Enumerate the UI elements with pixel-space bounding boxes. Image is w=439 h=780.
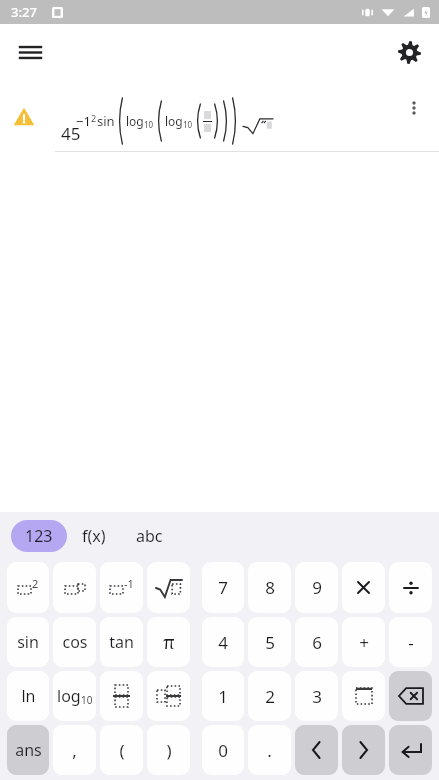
button[interactable]: More options [394, 88, 434, 128]
staticText: 123 [25, 525, 53, 547]
staticText: ln [21, 685, 36, 707]
staticText: 1 [218, 685, 228, 708]
button[interactable]: Move left [295, 725, 338, 775]
staticText: ans [15, 739, 42, 761]
button[interactable]: 6 [295, 617, 338, 667]
staticText: 45 [61, 122, 81, 145]
button[interactable]: Pi [147, 617, 190, 667]
staticText: sin [97, 112, 115, 130]
button[interactable]: Multiply [342, 562, 385, 613]
staticText: −1 [76, 112, 91, 130]
button[interactable]: Power [53, 562, 96, 613]
staticText: 3:27 [11, 3, 37, 21]
button[interactable]: Settings [387, 30, 431, 74]
staticText: - [408, 631, 414, 654]
button[interactable]: 5 [248, 617, 291, 667]
button[interactable]: ) [147, 725, 190, 775]
button[interactable]: Placeholder [342, 671, 385, 721]
staticText: 2 [265, 685, 275, 708]
button[interactable]: 123 [11, 520, 67, 552]
button[interactable]: 2 [248, 671, 291, 721]
button[interactable]: Square [7, 562, 49, 613]
button[interactable]: Matrix [147, 671, 190, 721]
button[interactable]: 7 [202, 562, 244, 613]
button[interactable]: 9 [295, 562, 338, 613]
staticText: + [359, 631, 369, 654]
staticText: cos [62, 631, 88, 653]
button[interactable]: ln [7, 671, 49, 721]
staticText: . [267, 739, 272, 762]
button[interactable]: Move right [342, 725, 385, 775]
button[interactable]: sin [7, 617, 49, 667]
staticText: log [57, 685, 81, 707]
staticText: , [72, 739, 77, 762]
button[interactable]: abc [121, 520, 178, 552]
button[interactable]: ( [100, 725, 143, 775]
staticText: f(x) [82, 525, 106, 547]
button[interactable]: Fraction [100, 671, 143, 721]
button[interactable]: , [53, 725, 96, 775]
button[interactable]: 0 [202, 725, 244, 775]
button[interactable]: cos [53, 617, 96, 667]
button[interactable]: - [389, 617, 432, 667]
button[interactable]: Menu [8, 30, 52, 74]
button[interactable]: Log base 10 [53, 671, 96, 721]
staticText: sin [17, 631, 39, 653]
button[interactable]: Enter [389, 725, 432, 775]
button[interactable]: Divide [389, 562, 432, 613]
staticText: 10 [144, 119, 154, 130]
button[interactable]: Square root [147, 562, 190, 613]
staticText: 4 [218, 631, 228, 654]
staticText: ( [119, 739, 125, 762]
staticText: 5 [265, 631, 275, 654]
staticText: 8 [265, 576, 275, 599]
staticText: 10 [81, 693, 93, 707]
staticText: log [165, 113, 183, 129]
staticText: 0 [218, 739, 228, 762]
staticText: abc [136, 525, 163, 547]
button[interactable]: 1 [202, 671, 244, 721]
button[interactable]: 3 [295, 671, 338, 721]
button[interactable]: 4 [202, 617, 244, 667]
staticText: tan [109, 631, 134, 653]
staticText: π [163, 630, 175, 655]
staticText: 6 [312, 631, 322, 654]
staticText: 2 [91, 112, 97, 124]
staticText: log [126, 113, 144, 129]
staticText: 7 [218, 576, 228, 599]
button[interactable]: . [248, 725, 291, 775]
staticText: 10 [183, 119, 193, 130]
staticText: 3 [312, 685, 322, 708]
button[interactable]: Backspace [389, 671, 432, 721]
button[interactable]: Inverse [100, 562, 143, 613]
staticText: 9 [312, 576, 322, 599]
button[interactable]: ans [7, 725, 49, 775]
button[interactable]: + [342, 617, 385, 667]
staticText: -1 [124, 576, 134, 591]
button[interactable]: f(x) [67, 520, 121, 552]
button[interactable]: tan [100, 617, 143, 667]
staticText: 2 [32, 576, 39, 591]
button[interactable]: 8 [248, 562, 291, 613]
staticText: ) [166, 739, 172, 762]
